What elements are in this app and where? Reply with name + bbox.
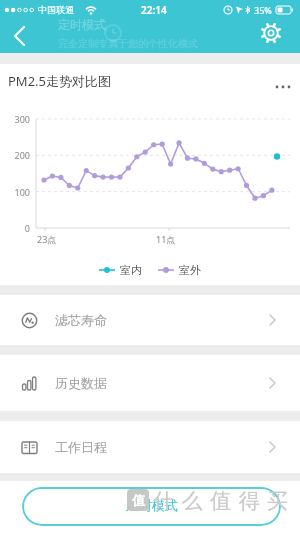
staticText: 200: [12, 149, 30, 161]
button[interactable]: [6, 22, 34, 50]
button[interactable]: 定时模式: [22, 487, 281, 526]
button[interactable]: 工作日程: [0, 421, 300, 473]
staticText: PM2.5走势对比图: [8, 72, 112, 90]
staticText: 什么值得买: [153, 488, 296, 514]
button[interactable]: 历史数据: [0, 355, 300, 411]
staticText: 室外: [179, 263, 201, 277]
staticText: 定时模式: [126, 497, 178, 513]
staticText: 23点: [37, 233, 57, 245]
staticText: 完全定制专属于您的个性化模式: [58, 37, 198, 50]
staticText: 35%: [254, 4, 272, 16]
staticText: 工作日程: [55, 439, 107, 455]
staticText: 定时模式: [58, 17, 106, 32]
staticText: 300: [12, 113, 30, 125]
staticText: 室内: [120, 263, 142, 277]
staticText: 11点: [156, 233, 176, 245]
button[interactable]: [274, 64, 294, 96]
staticText: 历史数据: [55, 375, 107, 391]
button[interactable]: [258, 20, 284, 46]
staticText: 0: [12, 222, 30, 234]
button[interactable]: 滤芯寿命: [0, 295, 300, 345]
staticText: 100: [12, 186, 30, 198]
staticText: 值: [132, 492, 145, 508]
staticText: 22:14: [141, 3, 167, 17]
staticText: 滤芯寿命: [55, 312, 107, 328]
staticText: 中国联通: [38, 4, 74, 15]
